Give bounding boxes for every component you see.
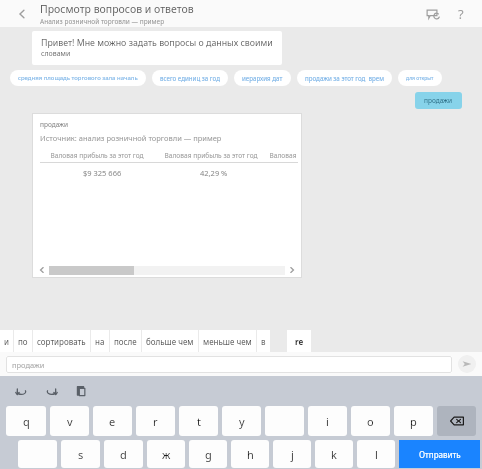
button[interactable]: v <box>50 406 89 436</box>
staticText: Отправить <box>419 449 461 460</box>
staticText: t <box>197 414 201 429</box>
staticText: Валовая прибыль за этот год <box>154 151 268 160</box>
button[interactable]: y <box>222 406 261 436</box>
button[interactable] <box>18 440 57 468</box>
button[interactable]: в <box>257 330 270 352</box>
staticText: продажи <box>424 96 453 105</box>
staticText: и <box>4 336 9 347</box>
staticText: re <box>295 336 304 347</box>
button[interactable]: j <box>273 440 311 468</box>
staticText: s <box>78 447 84 462</box>
staticText: v <box>67 414 73 429</box>
staticText: средняя площадь торгового зала началь <box>18 74 138 82</box>
button[interactable]: k <box>315 440 353 468</box>
button[interactable] <box>265 406 304 436</box>
button[interactable]: меньше чем <box>199 330 256 352</box>
button[interactable]: Справка <box>448 0 474 27</box>
staticText: Источник: анализ розничной торговли — пр… <box>40 133 222 143</box>
button[interactable]: Отменить <box>10 380 32 402</box>
staticText: Валовая прибыль за этот год <box>40 151 154 160</box>
staticText: o <box>367 414 374 429</box>
staticText: словами <box>41 49 71 59</box>
staticText: j <box>291 447 294 462</box>
button[interactable]: продажи за этот год врем <box>297 70 392 86</box>
button[interactable]: s <box>61 440 100 468</box>
button[interactable]: всего единиц за год <box>152 70 228 86</box>
staticText: e <box>109 414 116 429</box>
button[interactable]: по <box>14 330 32 352</box>
staticText: меньше чем <box>203 336 252 347</box>
staticText: 42,29 % <box>200 168 228 178</box>
button[interactable]: e <box>93 406 132 436</box>
button[interactable]: на <box>91 330 109 352</box>
button[interactable]: продажи <box>6 356 452 373</box>
button[interactable]: для открыт <box>398 70 442 86</box>
staticText: q <box>23 414 30 429</box>
button[interactable]: Отправить <box>458 355 476 373</box>
button[interactable]: и <box>0 330 13 352</box>
button[interactable]: o <box>351 406 390 436</box>
staticText: y <box>239 414 245 429</box>
staticText: r <box>153 414 158 429</box>
staticText: g <box>205 447 212 462</box>
button[interactable]: Прокрутить влево <box>35 263 49 277</box>
button[interactable]: Комментарии <box>418 0 448 27</box>
button[interactable]: Прокрутить вправо <box>285 263 299 277</box>
staticText: продажи за этот год врем <box>305 74 384 82</box>
button[interactable]: i <box>308 406 347 436</box>
button[interactable]: Отправить <box>399 440 480 468</box>
staticText: на <box>95 336 105 347</box>
staticText: больше чем <box>146 336 194 347</box>
staticText: Валовая п… <box>268 151 298 160</box>
staticText: Анализ розничной торговли — пример <box>40 17 165 26</box>
button[interactable]: больше чем <box>142 330 198 352</box>
button[interactable]: l <box>357 440 395 468</box>
staticText: ? <box>458 5 464 23</box>
staticText: продажи <box>12 360 45 370</box>
staticText: $9 325 666 <box>83 168 122 178</box>
staticText: для открыт <box>406 75 434 82</box>
staticText: k <box>331 447 337 462</box>
staticText: ж <box>162 447 171 462</box>
button[interactable]: после <box>110 330 141 352</box>
staticText: d <box>120 447 127 462</box>
button[interactable]: re <box>287 330 311 352</box>
staticText: всего единиц за год <box>160 74 220 82</box>
staticText: сортировать <box>37 336 86 347</box>
staticText: в <box>261 336 266 347</box>
button[interactable]: h <box>231 440 269 468</box>
button[interactable]: t <box>179 406 218 436</box>
button[interactable]: ж <box>147 440 185 468</box>
staticText: после <box>114 336 137 347</box>
staticText: иерархия дат <box>242 74 283 82</box>
staticText: продажи <box>40 120 69 129</box>
staticText: p <box>410 414 417 429</box>
button[interactable]: d <box>104 440 143 468</box>
button[interactable]: g <box>189 440 227 468</box>
staticText: Просмотр вопросов и ответов <box>40 2 194 16</box>
button[interactable]: r <box>136 406 175 436</box>
button[interactable]: p <box>394 406 433 436</box>
button[interactable]: средняя площадь торгового зала началь <box>10 70 146 86</box>
button[interactable]: Повторить <box>40 380 62 402</box>
button[interactable]: q <box>6 406 46 436</box>
staticText: h <box>247 447 254 462</box>
button[interactable]: Копировать <box>70 380 92 402</box>
staticText: i <box>326 414 329 429</box>
button[interactable]: Назад <box>8 0 36 27</box>
button[interactable]: Удалить <box>437 406 476 436</box>
staticText: Привет! Мне можно задать вопросы о данны… <box>41 37 273 49</box>
staticText: l <box>375 447 378 462</box>
staticText: по <box>18 336 28 347</box>
button[interactable]: иерархия дат <box>234 70 291 86</box>
button[interactable]: сортировать <box>33 330 90 352</box>
